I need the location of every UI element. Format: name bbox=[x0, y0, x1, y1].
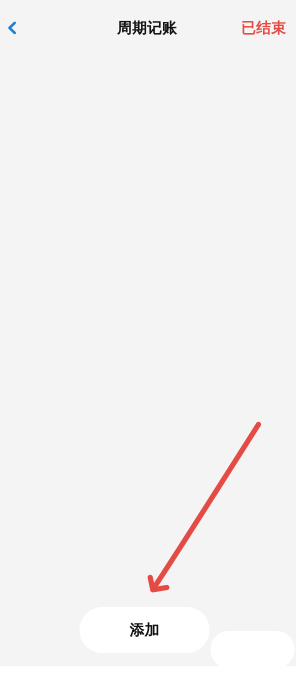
button[interactable]: 已结束 bbox=[227, 7, 296, 49]
staticText: 周期记账 bbox=[117, 19, 177, 37]
button[interactable]: 添加 bbox=[79, 607, 209, 653]
staticText: 已结束 bbox=[241, 19, 286, 37]
button[interactable]: Back bbox=[0, 9, 32, 46]
staticText: 添加 bbox=[129, 621, 159, 639]
